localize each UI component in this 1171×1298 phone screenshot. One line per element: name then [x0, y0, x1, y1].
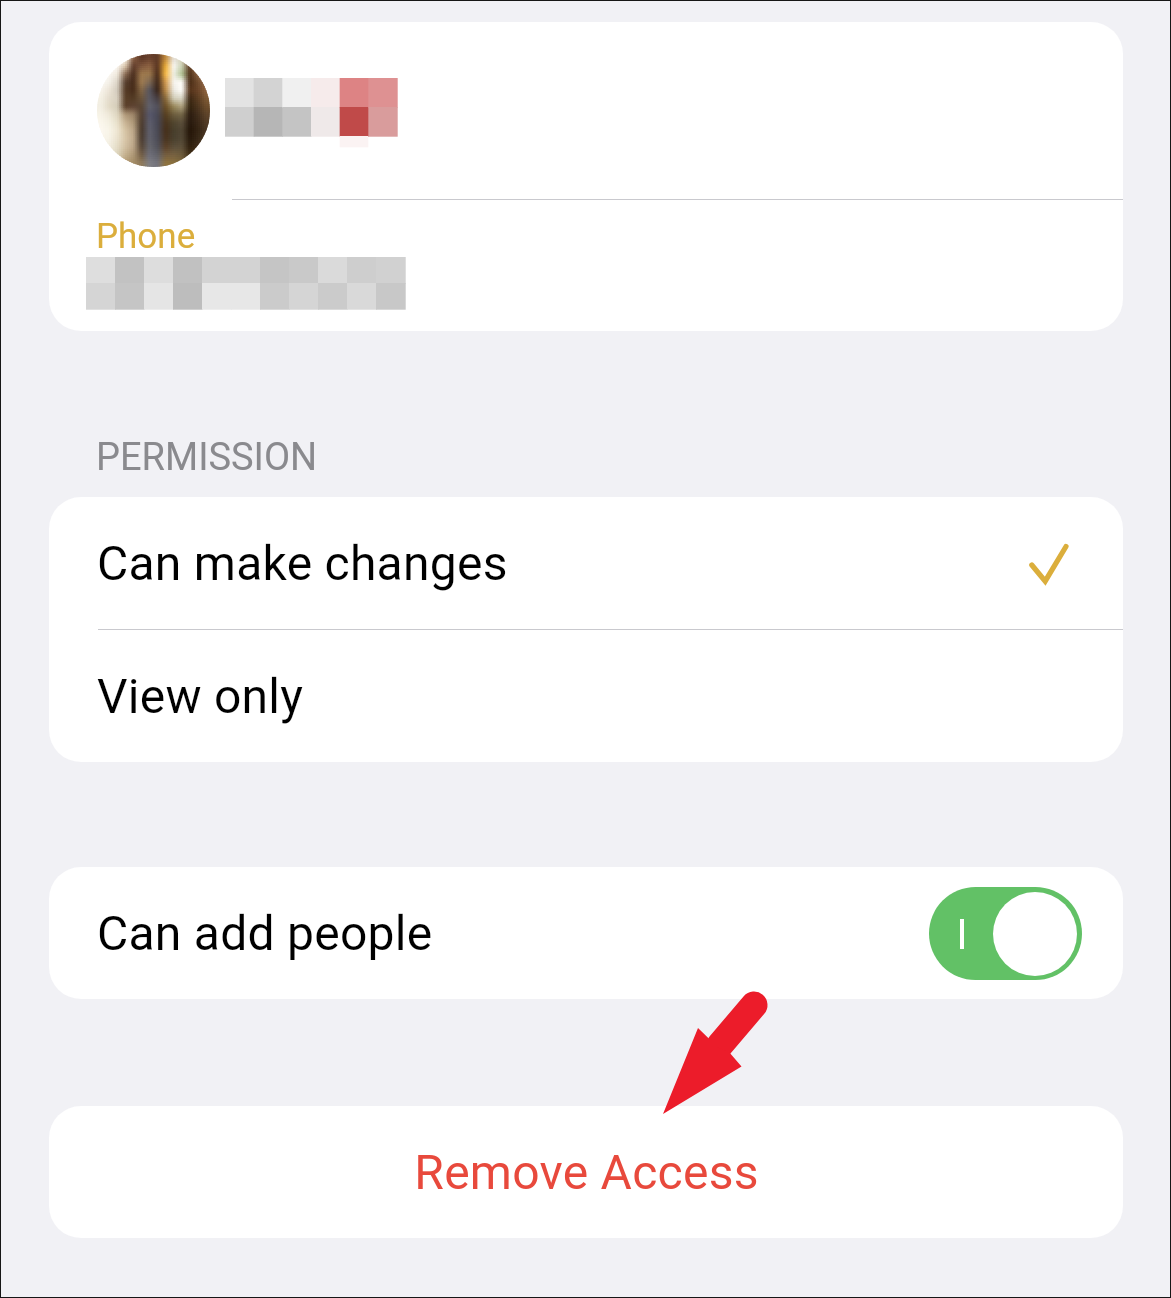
staticText: Can make changes [97, 535, 508, 591]
staticText: PERMISSION [96, 435, 318, 480]
staticText: Remove Access [414, 1144, 759, 1200]
button[interactable]: Remove Access [49, 1106, 1123, 1238]
staticText: View only [97, 668, 304, 724]
button[interactable]: Can add people [49, 867, 1123, 999]
button[interactable]: Can make changes [49, 497, 1123, 629]
button[interactable]: View only [49, 630, 1123, 762]
staticText: Can add people [97, 905, 433, 961]
button[interactable]: Can add people, on [929, 887, 1082, 980]
staticText: Phone [96, 216, 196, 257]
button[interactable]: Contact photo [97, 54, 210, 167]
